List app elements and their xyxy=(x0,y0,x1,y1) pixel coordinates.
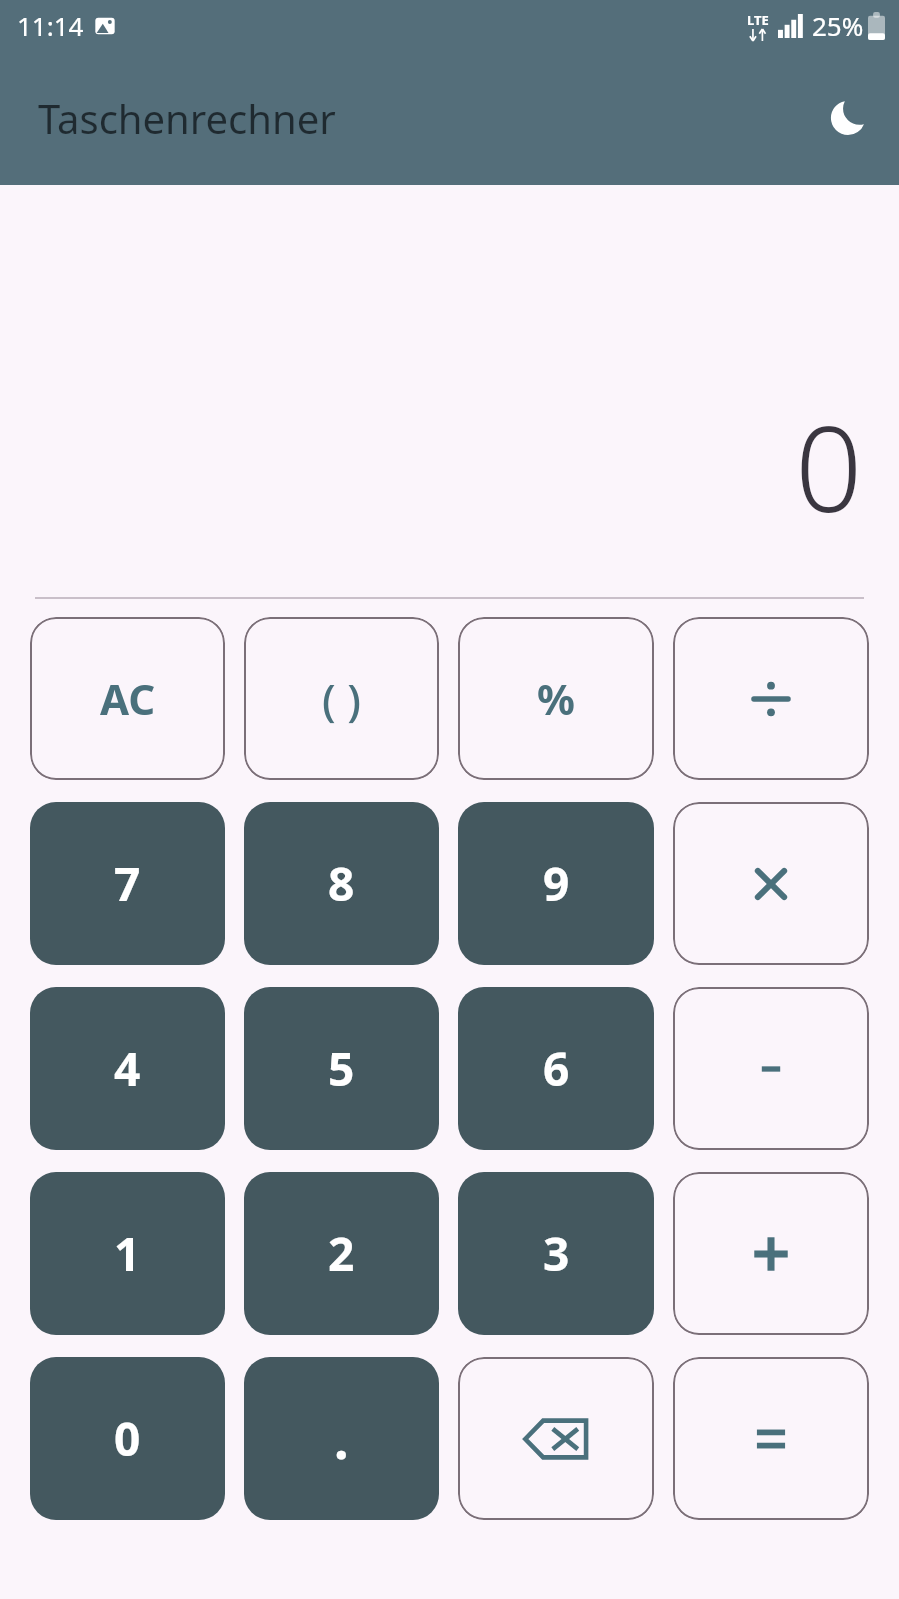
staticText: 9 xyxy=(543,852,570,915)
button[interactable]: Dark mode xyxy=(819,89,877,147)
button[interactable]: 8 xyxy=(244,802,439,965)
button[interactable]: 6 xyxy=(458,987,654,1150)
button[interactable]: AC xyxy=(30,617,225,780)
button[interactable]: Multiply xyxy=(673,802,869,965)
button[interactable]: 4 xyxy=(30,987,225,1150)
button[interactable]: 5 xyxy=(244,987,439,1150)
button[interactable]: Backspace xyxy=(458,1357,654,1520)
button[interactable]: Equals xyxy=(673,1357,869,1520)
staticText: 8 xyxy=(328,852,355,915)
staticText: 25% xyxy=(812,8,864,43)
staticText: 2 xyxy=(328,1222,355,1285)
button[interactable]: 1 xyxy=(30,1172,225,1335)
staticText: LTE xyxy=(747,11,769,29)
staticText: . xyxy=(334,1403,349,1474)
staticText: 1 xyxy=(114,1222,141,1285)
button[interactable]: 9 xyxy=(458,802,654,965)
button[interactable]: Plus xyxy=(673,1172,869,1335)
staticText: ( ) xyxy=(322,669,361,729)
button[interactable]: Divide xyxy=(673,617,869,780)
staticText: 6 xyxy=(543,1037,570,1100)
staticText: 5 xyxy=(328,1037,355,1100)
staticText: 4 xyxy=(114,1037,141,1100)
staticText: Taschenrechner xyxy=(38,91,336,145)
staticText: 7 xyxy=(114,852,141,915)
staticText: 0 xyxy=(114,1407,141,1470)
staticText: 0 xyxy=(795,386,863,547)
button[interactable]: 0 xyxy=(30,1357,225,1520)
button[interactable]: 7 xyxy=(30,802,225,965)
button[interactable]: 3 xyxy=(458,1172,654,1335)
button[interactable]: 2 xyxy=(244,1172,439,1335)
button[interactable]: . xyxy=(244,1357,439,1520)
button[interactable]: ( ) xyxy=(244,617,439,780)
staticText: % xyxy=(537,670,575,727)
staticText: 11:14 xyxy=(17,8,84,43)
staticText: AC xyxy=(100,670,156,727)
button[interactable]: % xyxy=(458,617,654,780)
button[interactable]: Minus xyxy=(673,987,869,1150)
staticText: 3 xyxy=(543,1222,570,1285)
